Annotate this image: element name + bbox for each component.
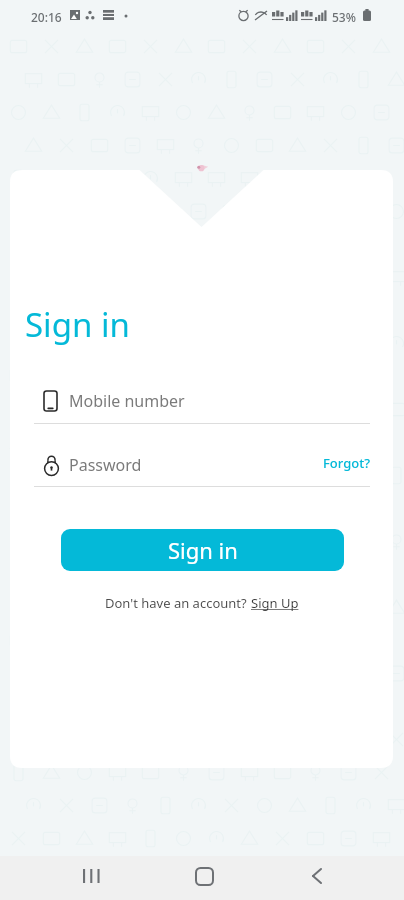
button[interactable]: Password: [34, 438, 370, 485]
staticText: Don't have an account?: [105, 594, 251, 612]
button[interactable]: Back: [287, 854, 347, 898]
staticText: Password: [69, 454, 142, 476]
staticText: Sign in: [25, 302, 130, 347]
staticText: Sign Up: [251, 594, 299, 612]
staticText: Sign in: [168, 535, 238, 565]
staticText: 53%: [332, 9, 356, 25]
button[interactable]: Recents: [60, 854, 120, 898]
button[interactable]: Sign Up: [251, 594, 299, 612]
button[interactable]: Mobile number: [34, 370, 370, 422]
button[interactable]: Sign in: [61, 529, 344, 571]
staticText: 20:16: [31, 9, 62, 25]
staticText: Forgot?: [323, 454, 370, 472]
button[interactable]: Home: [174, 854, 234, 898]
staticText: Mobile number: [69, 390, 185, 412]
button[interactable]: Forgot?: [319, 450, 374, 476]
